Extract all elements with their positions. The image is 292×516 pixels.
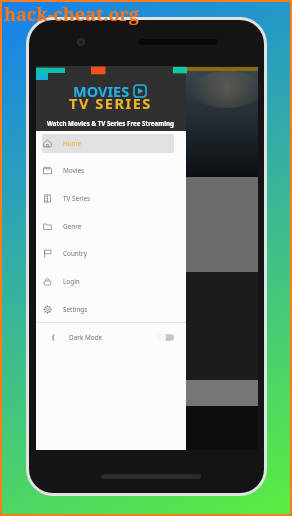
button[interactable]: Country [36,239,186,267]
staticText: Movies [63,166,85,175]
button[interactable]: Dark Mode [36,323,186,351]
button[interactable]: Home [36,129,186,157]
staticText: Dark Mode [69,333,103,342]
button[interactable]: Genre [36,212,186,240]
button[interactable]: Login [36,267,186,295]
staticText: MOVIES [73,81,130,101]
other: Dark mode toggle [156,332,176,343]
staticText: Settings [63,305,88,314]
staticText: TV SERIES [69,93,152,113]
staticText: Login [63,277,80,286]
staticText: Home [63,139,82,148]
button[interactable]: TV Series [36,184,186,212]
staticText: TV Series [63,194,91,203]
button[interactable]: Settings [36,295,186,323]
staticText: Country [63,249,88,258]
staticText: hack-cheat.org [4,2,140,27]
staticText: Watch Movies & TV Series Free Streaming [47,119,175,127]
staticText: Genre [63,222,82,231]
button[interactable]: Movies [36,156,186,184]
